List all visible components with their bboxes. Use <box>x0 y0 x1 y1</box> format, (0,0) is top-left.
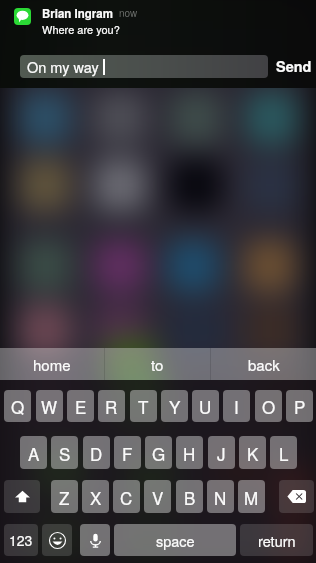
button[interactable]: H <box>176 436 203 469</box>
button[interactable]: G <box>145 436 172 469</box>
button[interactable]: Shift <box>4 480 40 513</box>
button[interactable]: J <box>208 436 235 469</box>
staticText: A <box>28 441 40 465</box>
staticText: R <box>105 394 118 418</box>
staticText: B <box>184 485 196 509</box>
button[interactable]: C <box>113 480 140 513</box>
staticText: Send <box>276 56 312 77</box>
button[interactable]: U <box>192 390 219 422</box>
button[interactable]: Z <box>51 480 78 513</box>
staticText: now <box>119 6 138 20</box>
button[interactable]: P <box>286 390 313 422</box>
staticText: P <box>294 394 306 418</box>
button[interactable]: Y <box>161 390 188 422</box>
button[interactable]: Backspace <box>279 480 314 513</box>
staticText: Where are you? <box>42 21 120 37</box>
staticText: I <box>234 394 239 418</box>
button[interactable]: X <box>82 480 109 513</box>
button[interactable]: space <box>114 524 236 556</box>
staticText: Q <box>11 394 25 418</box>
button[interactable]: 123 <box>4 524 38 556</box>
button[interactable]: On my way <box>20 55 268 78</box>
button[interactable]: Dictation <box>80 524 110 556</box>
button[interactable]: Send <box>272 55 316 78</box>
staticText: T <box>138 394 149 418</box>
staticText: H <box>183 441 196 465</box>
staticText: Z <box>59 485 70 509</box>
button[interactable]: A <box>20 436 47 469</box>
staticText: G <box>152 441 166 465</box>
staticText: return <box>258 530 296 551</box>
button[interactable]: back <box>211 348 316 380</box>
button[interactable]: W <box>36 390 63 422</box>
staticText: E <box>75 394 87 418</box>
staticText: space <box>156 530 195 551</box>
button[interactable]: Q <box>4 390 31 422</box>
button[interactable]: return <box>240 524 313 556</box>
button[interactable]: N <box>207 480 234 513</box>
staticText: C <box>120 485 133 509</box>
staticText: X <box>90 485 102 509</box>
staticText: L <box>279 441 289 465</box>
button[interactable]: L <box>270 436 297 469</box>
button[interactable]: K <box>239 436 266 469</box>
staticText: U <box>199 394 212 418</box>
button[interactable]: T <box>130 390 157 422</box>
button[interactable]: R <box>98 390 125 422</box>
staticText: J <box>217 441 226 465</box>
button[interactable]: home <box>0 348 104 380</box>
staticText: M <box>244 485 259 509</box>
staticText: home <box>33 354 71 375</box>
staticText: On my way <box>27 56 99 77</box>
button[interactable]: B <box>176 480 203 513</box>
button[interactable]: F <box>114 436 141 469</box>
button[interactable]: D <box>83 436 110 469</box>
button[interactable]: E <box>67 390 94 422</box>
staticText: Brian Ingram <box>42 5 113 21</box>
staticText: back <box>248 354 280 375</box>
staticText: 123 <box>9 530 33 550</box>
button[interactable]: to <box>105 348 210 380</box>
staticText: to <box>151 354 164 375</box>
button[interactable]: S <box>51 436 78 469</box>
staticText: S <box>59 441 71 465</box>
staticText: K <box>247 441 259 465</box>
staticText: N <box>214 485 227 509</box>
staticText: Y <box>169 394 181 418</box>
staticText: F <box>122 441 133 465</box>
button[interactable]: O <box>255 390 282 422</box>
staticText: O <box>262 394 276 418</box>
staticText: W <box>41 394 58 418</box>
button[interactable]: Emoji <box>42 524 72 556</box>
staticText: V <box>152 485 164 509</box>
staticText: D <box>90 441 103 465</box>
button[interactable]: M <box>238 480 265 513</box>
button[interactable]: I <box>223 390 250 422</box>
button[interactable]: V <box>144 480 171 513</box>
